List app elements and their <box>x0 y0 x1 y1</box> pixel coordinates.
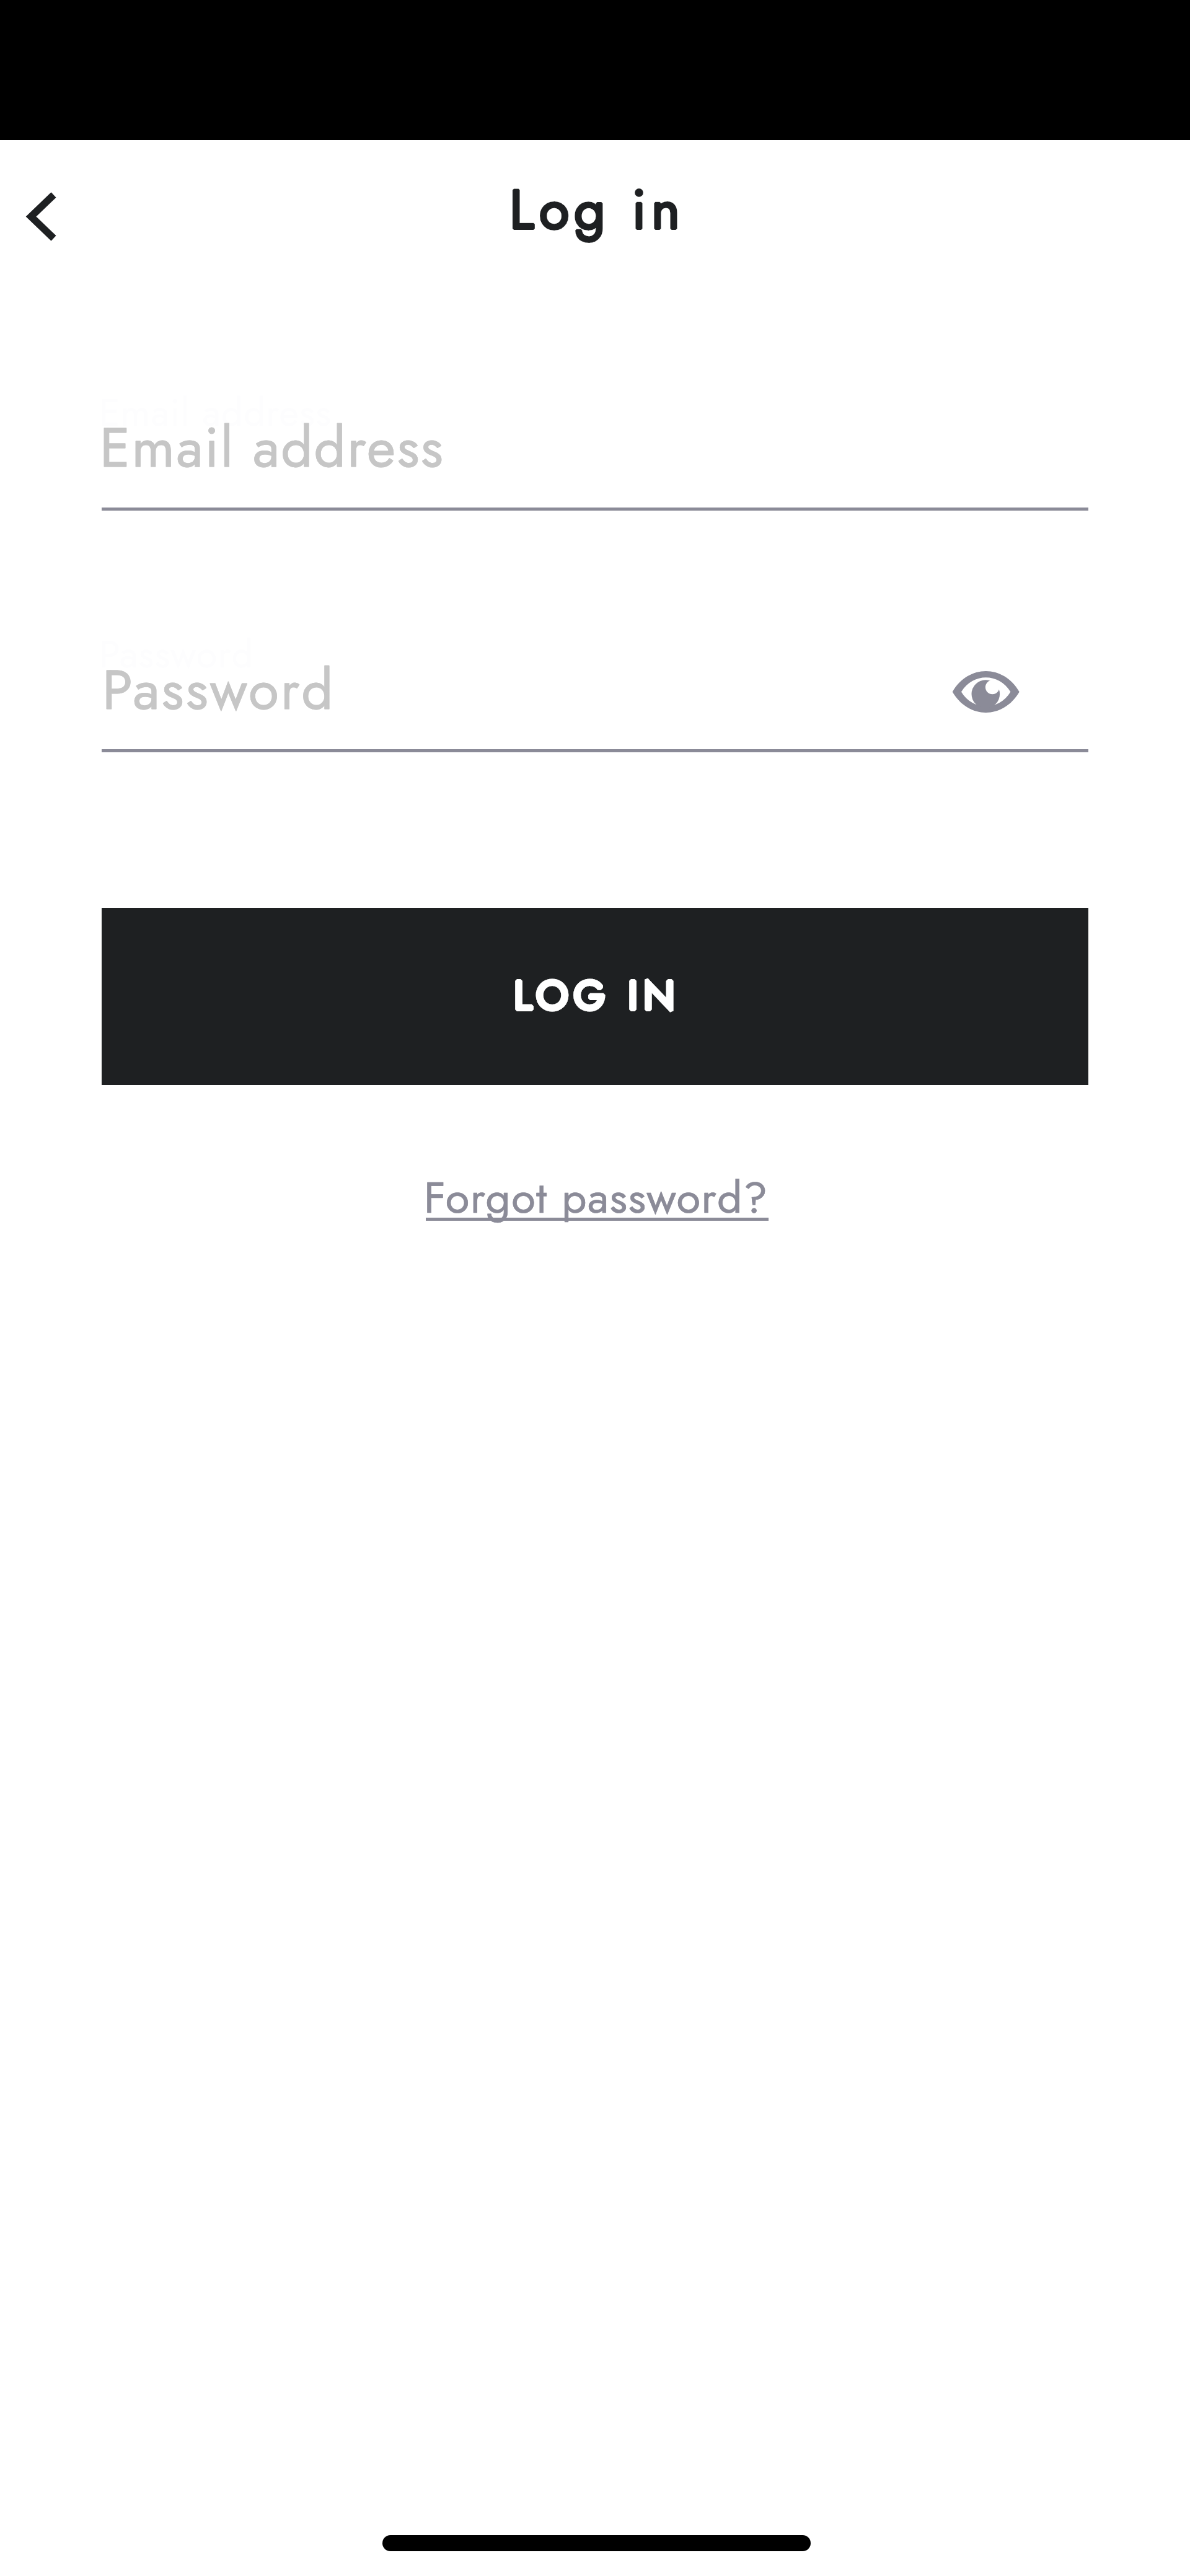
button[interactable]: Back <box>0 151 104 283</box>
staticText: LOG IN <box>514 966 681 1025</box>
staticText: Forgot password? <box>424 1166 769 1229</box>
button[interactable]: Email address <box>102 372 1088 527</box>
staticText: Forgot password? <box>424 1166 769 1229</box>
staticText: Email address <box>99 385 332 440</box>
button[interactable]: Forgot password? <box>424 1166 769 1229</box>
staticText: Log in <box>509 170 685 250</box>
staticText: Email address <box>100 408 445 488</box>
button[interactable]: LOG IN <box>102 908 1088 1085</box>
staticText: Email address <box>100 408 445 488</box>
button[interactable]: Password <box>102 613 1088 768</box>
staticText: Password <box>102 650 335 730</box>
staticText: Password <box>102 650 335 730</box>
staticText: Password <box>99 627 254 682</box>
staticText: Log in <box>509 170 685 250</box>
button[interactable]: Show password <box>927 642 1039 742</box>
staticText: LOG IN <box>514 966 681 1025</box>
